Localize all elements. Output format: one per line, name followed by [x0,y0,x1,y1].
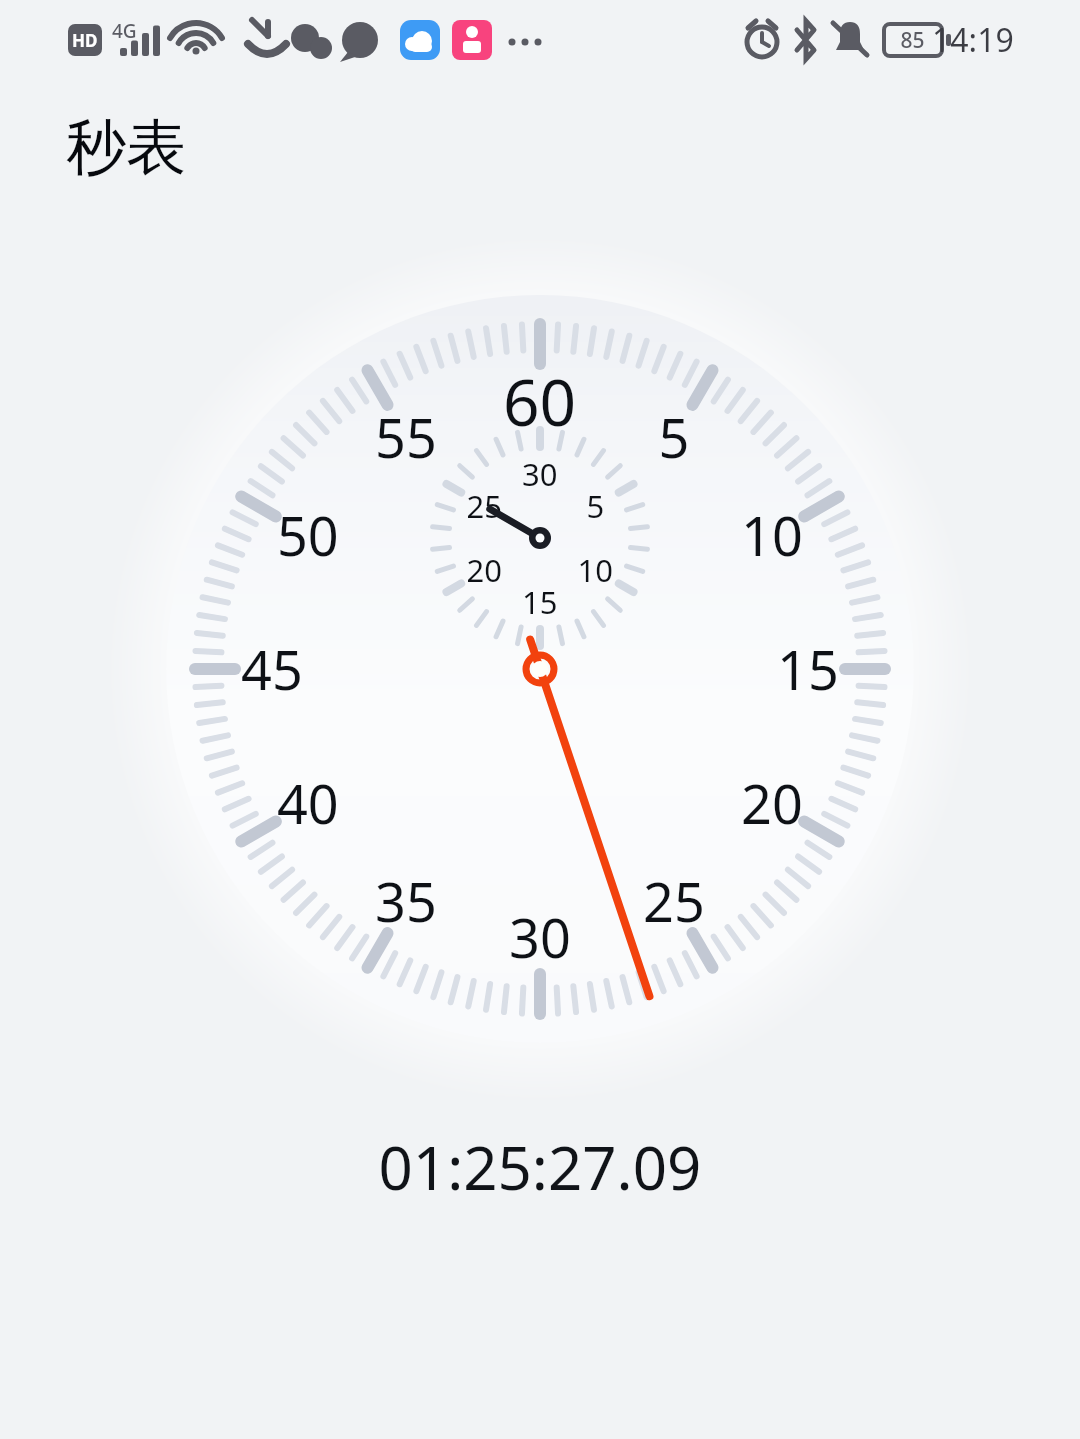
button[interactable]: Stopwatch [0,0,1080,1439]
